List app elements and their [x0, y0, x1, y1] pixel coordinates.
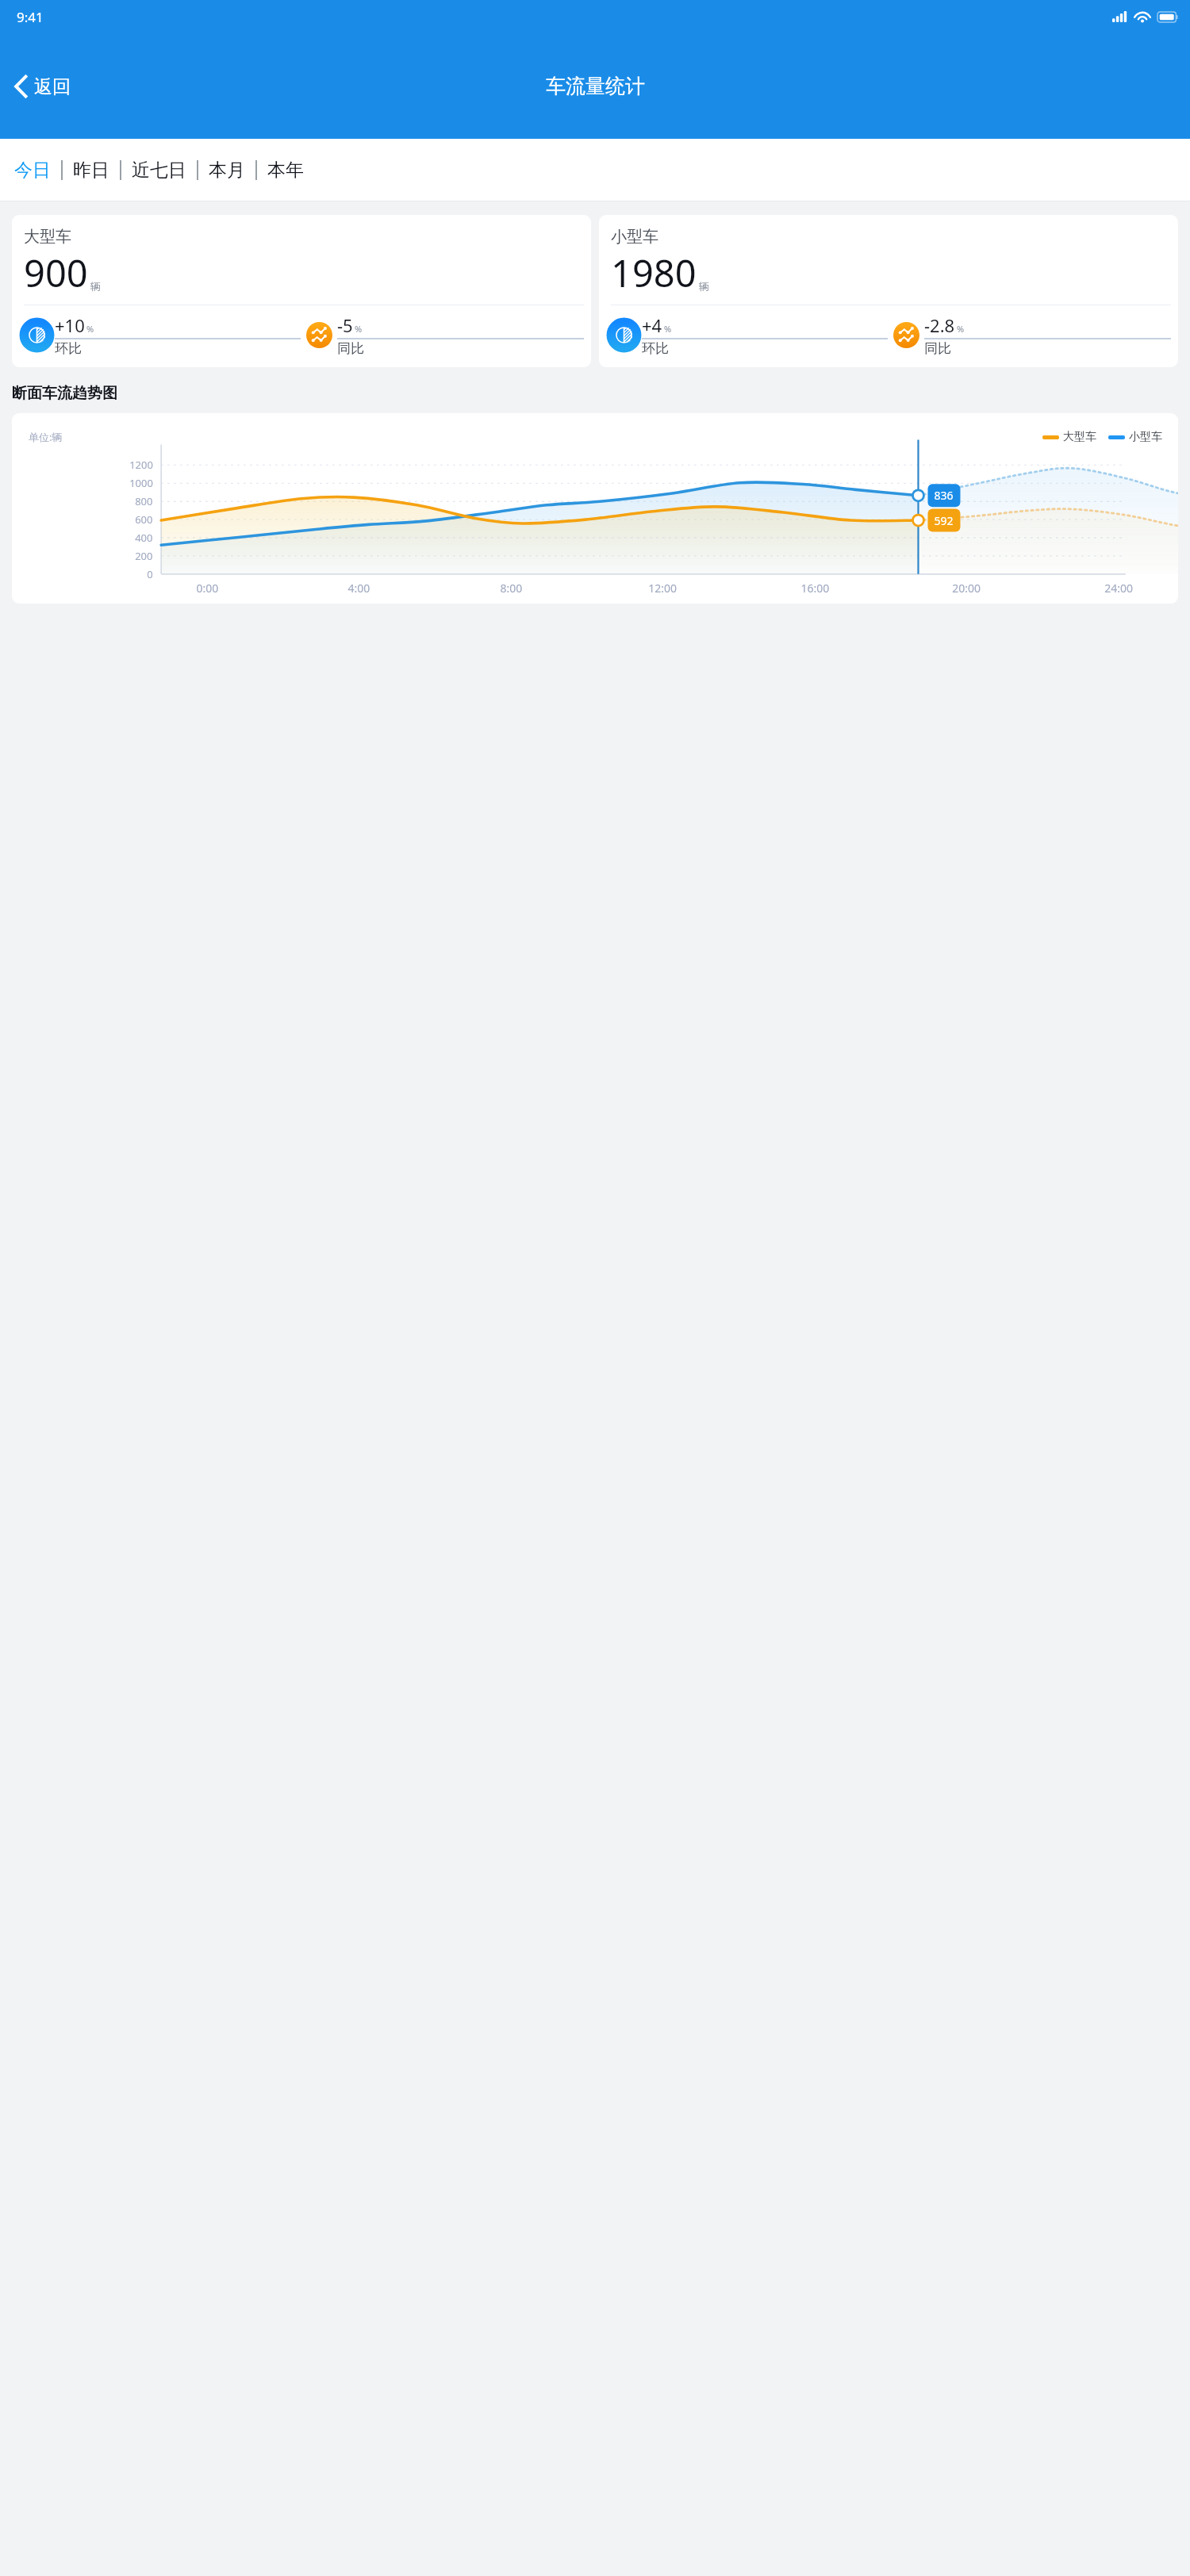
button[interactable]: 单位:辆	[12, 413, 1178, 604]
staticText: %	[86, 323, 94, 335]
button[interactable]: 本月	[205, 154, 248, 186]
staticText: 900	[24, 247, 88, 298]
staticText: %	[664, 323, 672, 335]
staticText: 本年	[267, 159, 304, 182]
button[interactable]: 环比	[24, 313, 301, 357]
staticText: 环比	[55, 340, 82, 357]
staticText: +4	[642, 313, 662, 337]
staticText: 辆	[699, 280, 709, 293]
button[interactable]: 本年	[264, 154, 307, 186]
staticText: 断面车流趋势图	[12, 384, 117, 403]
button[interactable]: 近七日	[129, 154, 190, 186]
other: 同比	[306, 322, 332, 348]
staticText: 今日	[14, 159, 51, 182]
staticText: 小型车	[611, 227, 658, 247]
staticText: +10	[55, 313, 85, 337]
other: 环比	[611, 322, 637, 348]
staticText: 小型车	[1129, 430, 1162, 444]
staticText: 大型车	[1063, 430, 1096, 444]
staticText: 环比	[642, 340, 669, 357]
button[interactable]: 今日	[11, 154, 54, 186]
button[interactable]: 昨日	[70, 154, 113, 186]
staticText: -2.8	[924, 313, 955, 337]
button[interactable]: 返回	[8, 68, 77, 105]
other: 环比	[24, 322, 50, 348]
staticText: 近七日	[132, 159, 186, 182]
button[interactable]: 同比	[306, 313, 584, 357]
staticText: 昨日	[73, 159, 109, 182]
staticText: %	[355, 323, 363, 335]
staticText: 大型车	[24, 227, 71, 247]
staticText: 辆	[90, 280, 101, 293]
button[interactable]: 环比	[611, 313, 888, 357]
staticText: 同比	[337, 340, 364, 357]
staticText: -5	[337, 313, 353, 337]
other: 返回	[14, 75, 29, 98]
button[interactable]: 小型车	[599, 215, 1178, 367]
staticText: 同比	[924, 340, 951, 357]
staticText: 单位:辆	[29, 430, 63, 444]
staticText: 9:41	[17, 8, 44, 26]
staticText: %	[957, 323, 965, 335]
staticText: 返回	[34, 75, 71, 98]
staticText: 车流量统计	[546, 74, 645, 98]
other: 同比	[893, 322, 919, 348]
staticText: 1980	[611, 247, 697, 298]
button[interactable]: 大型车	[12, 215, 591, 367]
staticText: 本月	[209, 159, 245, 182]
button[interactable]: 同比	[893, 313, 1171, 357]
